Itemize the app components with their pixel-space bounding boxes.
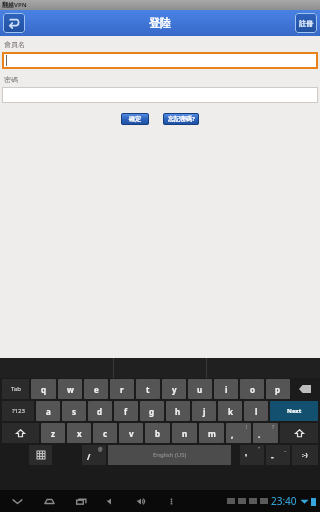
button[interactable] — [2, 87, 318, 103]
staticText: ' — [245, 451, 248, 462]
staticText: o — [250, 384, 255, 395]
staticText: c — [103, 428, 108, 439]
button[interactable]: j — [192, 401, 216, 421]
button[interactable]: b — [145, 423, 170, 443]
staticText: :-) — [302, 451, 308, 459]
button[interactable]: q — [31, 379, 56, 399]
button[interactable]: k — [218, 401, 242, 421]
button[interactable]: t — [136, 379, 160, 399]
staticText: l — [255, 406, 258, 417]
button[interactable]: u — [188, 379, 212, 399]
button[interactable]: ?123 — [2, 401, 34, 421]
button[interactable]: ! — [226, 423, 251, 443]
staticText: 23:40 — [271, 494, 297, 508]
button[interactable]: a — [36, 401, 60, 421]
button[interactable]: Shift — [280, 423, 318, 443]
staticText: 密碼 — [4, 75, 18, 84]
button[interactable]: Next — [270, 401, 318, 421]
staticText: h — [175, 406, 181, 417]
staticText: 會員名 — [4, 40, 25, 49]
button[interactable]: Hide keyboard — [10, 494, 24, 508]
staticText: w — [67, 384, 74, 395]
button[interactable]: l — [244, 401, 268, 421]
button[interactable]: i — [214, 379, 238, 399]
staticText: g — [149, 406, 155, 417]
staticText: z — [51, 428, 55, 439]
button[interactable]: s — [62, 401, 86, 421]
staticText: v — [129, 428, 134, 439]
button[interactable]: c — [93, 423, 117, 443]
staticText: n — [182, 428, 188, 439]
staticText: - — [271, 451, 274, 462]
staticText: y — [172, 384, 177, 395]
button[interactable]: Shift — [2, 423, 39, 443]
button[interactable]: More options — [164, 494, 178, 508]
staticText: k — [228, 406, 233, 417]
staticText: a — [46, 406, 51, 417]
staticText: , — [231, 429, 234, 440]
button[interactable]: 確定 — [121, 113, 149, 125]
staticText: r — [120, 384, 124, 395]
button[interactable]: English (US) — [108, 445, 231, 465]
staticText: j — [203, 406, 206, 417]
staticText: ! — [246, 424, 248, 431]
button[interactable]: n — [172, 423, 197, 443]
button[interactable]: p — [266, 379, 290, 399]
staticText: Next — [287, 407, 302, 415]
button[interactable]: x — [67, 423, 91, 443]
staticText: @ — [98, 446, 103, 453]
button[interactable] — [2, 52, 318, 69]
button[interactable]: y — [162, 379, 186, 399]
button[interactable]: 註冊 — [299, 19, 313, 28]
button[interactable]: :-) — [292, 445, 318, 465]
staticText: i — [225, 384, 228, 395]
staticText: q — [41, 384, 47, 395]
button[interactable]: ? — [253, 423, 278, 443]
staticText: p — [275, 384, 281, 395]
button[interactable]: Backspace — [292, 379, 318, 399]
button[interactable]: Volume down — [104, 494, 118, 508]
staticText: 翻越VPN — [2, 1, 27, 9]
button[interactable]: Back — [3, 13, 25, 33]
button[interactable]: _ — [266, 445, 290, 465]
staticText: s — [72, 406, 77, 417]
staticText: _ — [284, 446, 287, 453]
button[interactable]: r — [110, 379, 134, 399]
button[interactable]: w — [58, 379, 82, 399]
button[interactable]: " — [240, 445, 264, 465]
button[interactable]: o — [240, 379, 264, 399]
button[interactable]: Recents — [74, 494, 88, 508]
button[interactable]: g — [140, 401, 164, 421]
button[interactable]: Tab — [2, 379, 29, 399]
staticText: 登陸 — [149, 16, 171, 30]
staticText: e — [94, 384, 99, 395]
staticText: " — [258, 446, 261, 453]
button[interactable]: Volume up — [134, 494, 148, 508]
staticText: b — [155, 428, 161, 439]
staticText: m — [208, 428, 216, 439]
staticText: / — [87, 451, 91, 462]
button[interactable]: v — [119, 423, 143, 443]
staticText: English (US) — [153, 451, 187, 459]
staticText: ? — [272, 424, 275, 431]
button[interactable]: Home — [42, 494, 56, 508]
button[interactable]: @ — [82, 445, 106, 465]
button[interactable]: h — [166, 401, 190, 421]
button[interactable]: d — [88, 401, 112, 421]
staticText: 忘記密碼? — [168, 115, 195, 123]
button[interactable]: f — [114, 401, 138, 421]
button[interactable]: m — [199, 423, 224, 443]
staticText: 確定 — [129, 115, 141, 123]
button[interactable]: e — [84, 379, 108, 399]
button[interactable]: Switch keyboard — [29, 445, 52, 465]
staticText: . — [258, 429, 261, 440]
button[interactable]: 忘記密碼? — [163, 113, 199, 125]
staticText: Tab — [11, 385, 21, 393]
staticText: t — [146, 384, 150, 395]
staticText: x — [77, 428, 82, 439]
staticText: ?123 — [12, 407, 25, 415]
button[interactable]: z — [41, 423, 65, 443]
